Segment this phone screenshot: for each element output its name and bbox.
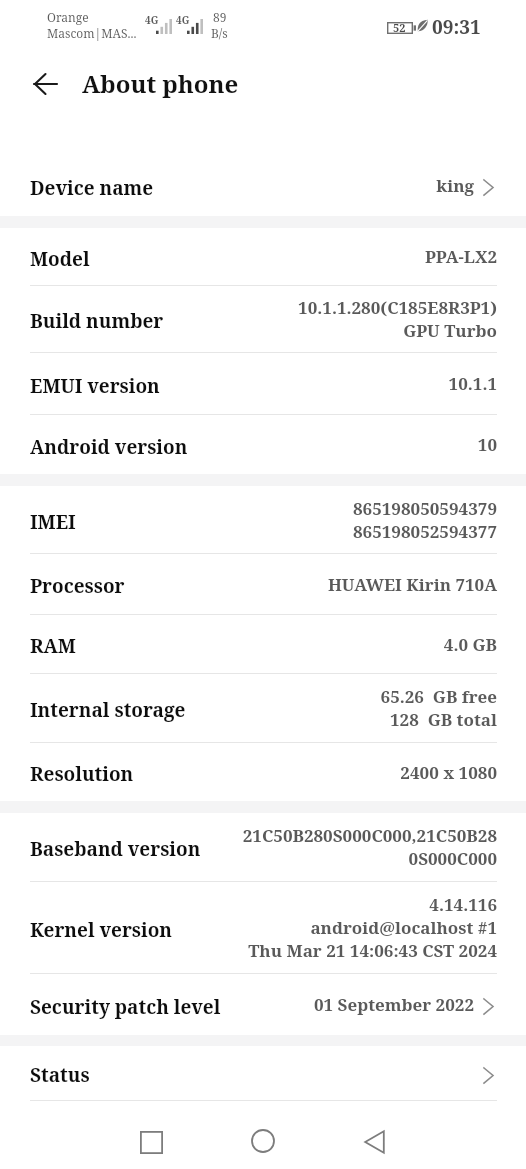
staticText: Security patch level	[30, 994, 221, 1020]
staticText: 0S000C000	[408, 847, 497, 870]
staticText: IMEI	[30, 509, 76, 535]
staticText: 09:31	[432, 14, 481, 40]
staticText: 4G	[176, 13, 190, 27]
staticText: B/s	[211, 25, 228, 41]
staticText: PPA-LX2	[424, 245, 497, 268]
staticText: 01 September 2022	[313, 993, 474, 1016]
button[interactable]: Back	[334, 1117, 414, 1167]
staticText: 4.0 GB	[443, 633, 497, 656]
staticText: About phone	[82, 67, 239, 100]
button[interactable]: Back	[23, 61, 68, 106]
staticText: Processor	[30, 573, 125, 599]
button[interactable]: Home	[223, 1116, 303, 1166]
button[interactable]: Resolution	[0, 743, 526, 801]
staticText: GPU Turbo	[403, 319, 497, 342]
button[interactable]: Internal storage	[0, 674, 526, 743]
staticText: Thu Mar 21 14:06:43 CST 2024	[248, 939, 497, 962]
staticText: Kernel version	[30, 917, 173, 943]
button[interactable]: RAM	[0, 615, 526, 674]
staticText: EMUI version	[30, 373, 160, 399]
button[interactable]: Processor	[0, 554, 526, 615]
staticText: Resolution	[30, 761, 134, 787]
staticText: Baseband version	[30, 836, 201, 862]
staticText: RAM	[30, 633, 76, 659]
button[interactable]: Model	[0, 228, 526, 286]
staticText: Mascom|MAS...	[47, 25, 137, 41]
staticText: 10.1.1	[448, 372, 497, 395]
staticText: 2400 x 1080	[400, 761, 497, 784]
button[interactable]: Baseband version	[0, 813, 526, 882]
button[interactable]: Kernel version	[0, 882, 526, 974]
button[interactable]: Build number	[0, 286, 526, 353]
staticText: 4.14.116	[429, 893, 497, 916]
staticText: Internal storage	[30, 697, 186, 723]
staticText: 10.1.1.280(C185E8R3P1)	[298, 296, 497, 319]
button[interactable]: IMEI	[0, 486, 526, 554]
staticText: 10	[477, 433, 497, 456]
staticText: 65.26 GB free	[380, 685, 497, 708]
staticText: 4G	[145, 13, 159, 27]
staticText: 128 GB total	[390, 708, 497, 731]
button[interactable]: Security patch level	[0, 974, 526, 1035]
button[interactable]: EMUI version	[0, 353, 526, 415]
staticText: 21C50B280S000C000,21C50B28	[242, 824, 497, 847]
staticText: Model	[30, 246, 90, 272]
button[interactable]: Recents	[111, 1117, 191, 1167]
staticText: 89	[213, 9, 227, 25]
button[interactable]: Device name	[0, 155, 526, 216]
staticText: HUAWEI Kirin 710A	[327, 573, 497, 596]
staticText: 865198050594379	[352, 497, 497, 520]
staticText: Device name	[30, 175, 154, 201]
staticText: 52	[393, 20, 406, 35]
staticText: Status	[30, 1062, 90, 1088]
staticText: 865198052594377	[352, 520, 497, 543]
button[interactable]: Status	[0, 1046, 526, 1101]
staticText: king	[436, 174, 474, 197]
button[interactable]: Android version	[0, 415, 526, 474]
staticText: Build number	[30, 308, 164, 334]
staticText: Android version	[30, 434, 188, 460]
staticText: android@localhost #1	[310, 916, 497, 939]
staticText: Orange	[47, 9, 89, 25]
